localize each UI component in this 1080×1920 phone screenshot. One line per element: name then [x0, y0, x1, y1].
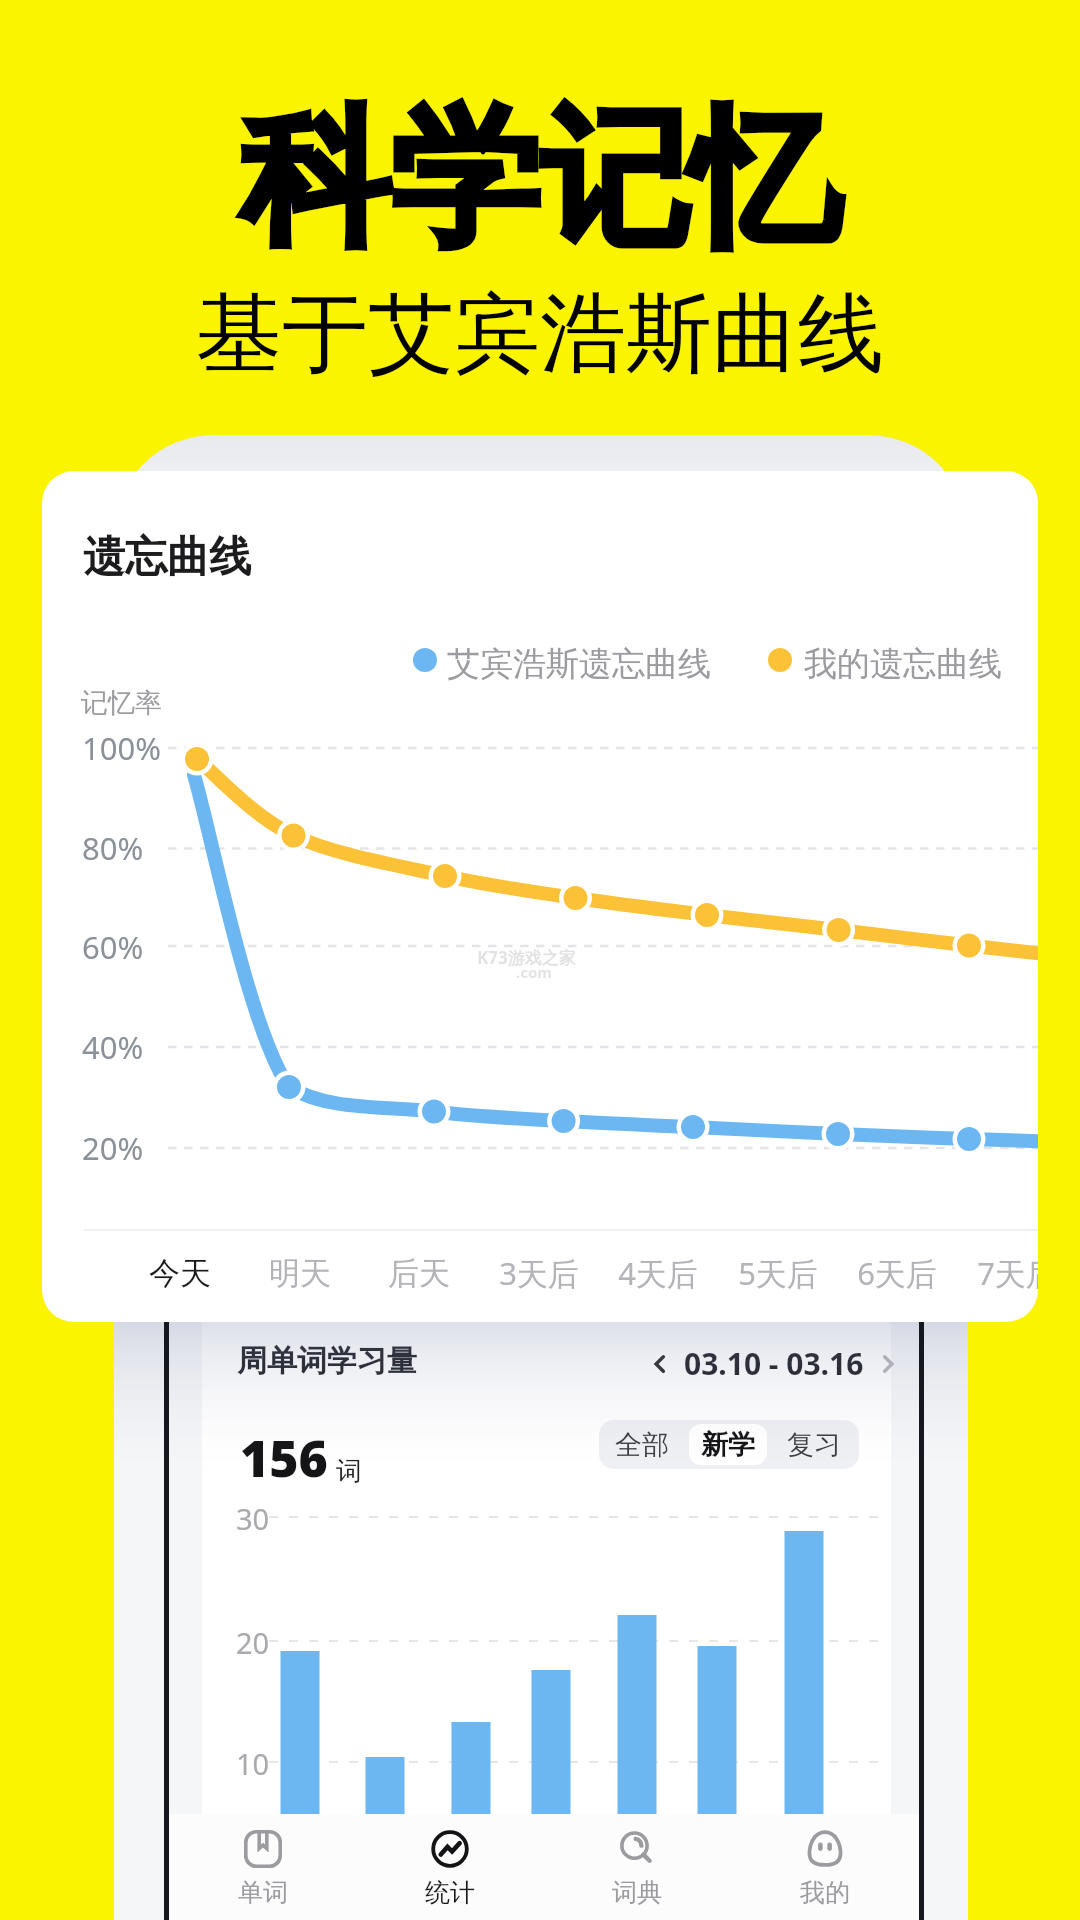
button[interactable]: Previous week [646, 1343, 902, 1384]
staticText: 100% [82, 727, 161, 769]
staticText: 明天 [269, 1254, 331, 1293]
button[interactable]: 单词 [169, 1814, 356, 1920]
button[interactable]: 复习 [775, 1424, 853, 1465]
other: Next week [874, 1350, 902, 1378]
staticText: 记忆率 [81, 686, 162, 720]
button[interactable]: 7天后 [955, 1250, 1038, 1296]
staticText: 4天后 [618, 1252, 698, 1294]
button[interactable]: 3天后 [477, 1250, 601, 1296]
staticText: 40% [82, 1026, 144, 1068]
staticText: 词 [336, 1455, 362, 1488]
button[interactable]: 6天后 [835, 1250, 959, 1296]
staticText: 我的遗忘曲线 [804, 643, 1002, 685]
staticText: 全部 [615, 1428, 669, 1462]
button[interactable]: 我的 [731, 1814, 919, 1920]
staticText: 单词 [238, 1877, 288, 1908]
staticText: 我的 [800, 1877, 850, 1908]
staticText: 统计 [425, 1877, 475, 1908]
staticText: .com [516, 962, 552, 982]
staticText: 3天后 [499, 1252, 579, 1294]
button[interactable]: 词典 [543, 1814, 731, 1920]
staticText: 156 [240, 1424, 328, 1492]
staticText: 03.10 - 03.16 [684, 1343, 864, 1384]
button[interactable]: 后天 [357, 1250, 481, 1296]
staticText: 艾宾浩斯遗忘曲线 [447, 643, 711, 685]
button[interactable]: 统计 [356, 1814, 543, 1920]
staticText: K73游戏之家 [477, 946, 576, 969]
staticText: 周单词学习量 [237, 1342, 417, 1380]
staticText: 基于艾宾浩斯曲线 [196, 280, 884, 388]
staticText: 60% [82, 926, 144, 968]
button[interactable]: 5天后 [716, 1250, 840, 1296]
button[interactable]: 明天 [238, 1250, 362, 1296]
staticText: 词典 [612, 1877, 662, 1908]
button[interactable]: 今天 [118, 1250, 242, 1296]
staticText: 遗忘曲线 [83, 531, 251, 584]
staticText: 科学记忆 [240, 86, 840, 275]
staticText: 后天 [388, 1254, 450, 1293]
staticText: 复习 [787, 1428, 841, 1462]
staticText: 新学 [701, 1428, 755, 1462]
staticText: 5天后 [738, 1252, 818, 1294]
button[interactable]: 4天后 [596, 1250, 720, 1296]
staticText: 今天 [149, 1254, 211, 1293]
staticText: 30 [236, 1499, 270, 1538]
staticText: 10 [236, 1744, 270, 1783]
other: Previous week [646, 1350, 674, 1378]
staticText: 6天后 [857, 1252, 937, 1294]
staticText: 80% [82, 827, 144, 869]
staticText: 20 [236, 1623, 270, 1662]
button[interactable]: 全部 [603, 1424, 681, 1465]
staticText: 7天后 [977, 1252, 1038, 1294]
staticText: 20% [82, 1127, 144, 1169]
button[interactable]: 新学 [689, 1424, 767, 1465]
